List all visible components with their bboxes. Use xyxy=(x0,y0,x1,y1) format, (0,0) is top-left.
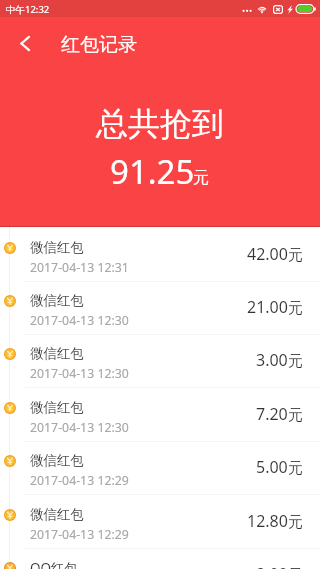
staticText: 8.00 xyxy=(256,563,288,569)
staticText: 91.25 xyxy=(110,149,195,194)
button[interactable]: 微信红包 xyxy=(0,442,320,495)
staticText: 微信红包 xyxy=(30,452,84,469)
button[interactable]: Back xyxy=(0,17,48,69)
staticText: 2017-04-13 12:30 xyxy=(30,312,129,329)
staticText: 2017-04-13 12:29 xyxy=(30,472,129,489)
staticText: 元 xyxy=(288,513,303,532)
staticText: 元 xyxy=(193,168,209,188)
staticText: 2017-04-13 12:29 xyxy=(30,526,129,543)
staticText: 5.00 xyxy=(256,456,288,478)
staticText: 微信红包 xyxy=(30,292,84,309)
staticText: 微信红包 xyxy=(30,506,84,523)
staticText: 总共抢到 xyxy=(96,104,224,144)
button[interactable]: 微信红包 xyxy=(0,335,320,388)
staticText: 元 xyxy=(288,406,303,425)
staticText: 微信红包 xyxy=(30,239,84,256)
staticText: 2017-04-13 12:30 xyxy=(30,365,129,382)
staticText: QQ红包 xyxy=(30,559,79,569)
staticText: 2017-04-13 12:30 xyxy=(30,419,129,436)
staticText: 中午12:32 xyxy=(6,3,50,16)
staticText: 元 xyxy=(288,299,303,318)
button[interactable]: 微信红包 xyxy=(0,389,320,442)
staticText: 12.80 xyxy=(247,510,288,532)
staticText: 21.00 xyxy=(247,296,288,318)
staticText: 元 xyxy=(288,566,303,569)
staticText: 元 xyxy=(288,246,303,265)
button[interactable]: 微信红包 xyxy=(0,496,320,549)
staticText: 微信红包 xyxy=(30,345,84,362)
button[interactable]: 微信红包 xyxy=(0,229,320,282)
button[interactable]: QQ红包 xyxy=(0,549,320,569)
staticText: 7.20 xyxy=(256,403,288,425)
staticText: 2017-04-13 12:31 xyxy=(30,259,129,276)
staticText: 红包记录 xyxy=(61,33,137,57)
staticText: 元 xyxy=(288,459,303,478)
staticText: 元 xyxy=(288,352,303,371)
button[interactable]: 微信红包 xyxy=(0,282,320,335)
staticText: 3.00 xyxy=(256,349,288,371)
staticText: 微信红包 xyxy=(30,399,84,416)
staticText: 42.00 xyxy=(247,243,288,265)
